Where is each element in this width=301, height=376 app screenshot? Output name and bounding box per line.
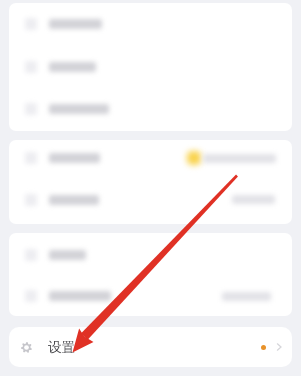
other: Settings icon: [21, 342, 32, 353]
button[interactable]: [9, 45, 292, 88]
staticText: 设置: [48, 339, 75, 356]
button[interactable]: [9, 276, 292, 316]
button[interactable]: [9, 176, 292, 223]
button[interactable]: [9, 88, 292, 130]
button[interactable]: [9, 3, 292, 45]
button[interactable]: [9, 140, 292, 176]
button[interactable]: [9, 234, 292, 276]
button[interactable]: Settings icon: [9, 327, 292, 367]
